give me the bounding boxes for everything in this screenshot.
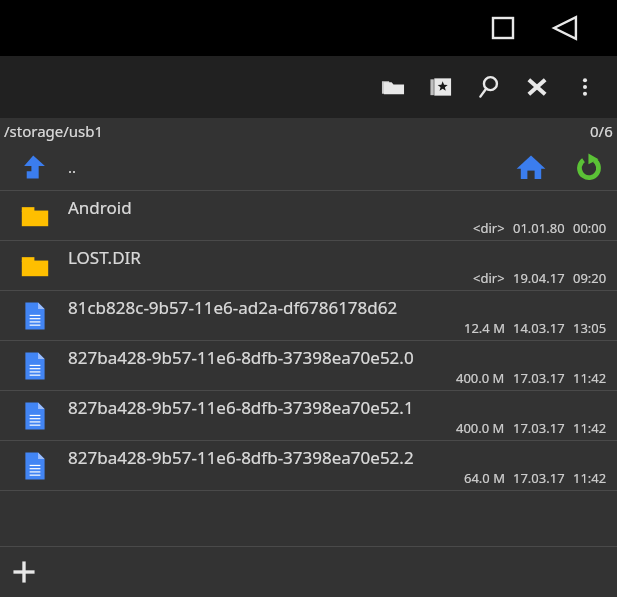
staticText: <dir> xyxy=(473,269,505,287)
button[interactable]: 827ba428-9b57-11e6-8dfb-37398ea70e52.2 xyxy=(0,441,617,490)
staticText: 0/6 xyxy=(590,121,613,141)
staticText: 00:00 xyxy=(573,219,607,237)
staticText: 09:20 xyxy=(573,269,607,287)
staticText: 827ba428-9b57-11e6-8dfb-37398ea70e52.2 xyxy=(68,446,414,469)
staticText: /storage/usb1 xyxy=(4,121,104,141)
button[interactable]: Refresh xyxy=(561,144,617,190)
button[interactable]: LOST.DIR xyxy=(0,241,617,290)
staticText: 17.03.17 xyxy=(513,369,565,387)
staticText: 11:42 xyxy=(573,419,607,437)
button[interactable]: Search xyxy=(465,63,513,111)
button[interactable]: 827ba428-9b57-11e6-8dfb-37398ea70e52.1 xyxy=(0,391,617,440)
button[interactable]: 81cb828c-9b57-11e6-ad2a-df6786178d62 xyxy=(0,291,617,340)
staticText: 12.4 M xyxy=(464,319,505,337)
button[interactable]: Recents xyxy=(479,4,527,52)
button[interactable]: Up one level xyxy=(0,144,68,190)
staticText: LOST.DIR xyxy=(68,246,141,269)
staticText: 01.01.80 xyxy=(513,219,565,237)
button[interactable]: 827ba428-9b57-11e6-8dfb-37398ea70e52.0 xyxy=(0,341,617,390)
staticText: <dir> xyxy=(473,219,505,237)
button[interactable]: More options xyxy=(561,63,609,111)
button[interactable]: Android xyxy=(0,191,617,240)
staticText: .. xyxy=(68,157,77,177)
staticText: 400.0 M xyxy=(456,369,505,387)
staticText: 14.03.17 xyxy=(513,319,565,337)
staticText: 400.0 M xyxy=(456,419,505,437)
staticText: 17.03.17 xyxy=(513,469,565,487)
button[interactable]: Add xyxy=(0,548,48,596)
staticText: 11:42 xyxy=(573,369,607,387)
staticText: 11:42 xyxy=(573,469,607,487)
staticText: 13:05 xyxy=(573,319,607,337)
staticText: 19.04.17 xyxy=(513,269,565,287)
staticText: 827ba428-9b57-11e6-8dfb-37398ea70e52.0 xyxy=(68,346,414,369)
button[interactable]: Bookmarks xyxy=(417,63,465,111)
staticText: 64.0 M xyxy=(464,469,505,487)
staticText: 17.03.17 xyxy=(513,419,565,437)
button[interactable]: Back xyxy=(541,4,589,52)
button[interactable]: Home xyxy=(501,144,561,190)
staticText: Android xyxy=(68,196,132,219)
staticText: 827ba428-9b57-11e6-8dfb-37398ea70e52.1 xyxy=(68,396,414,419)
button[interactable]: Close xyxy=(513,63,561,111)
staticText: 81cb828c-9b57-11e6-ad2a-df6786178d62 xyxy=(68,296,398,319)
button[interactable]: New folder xyxy=(369,63,417,111)
